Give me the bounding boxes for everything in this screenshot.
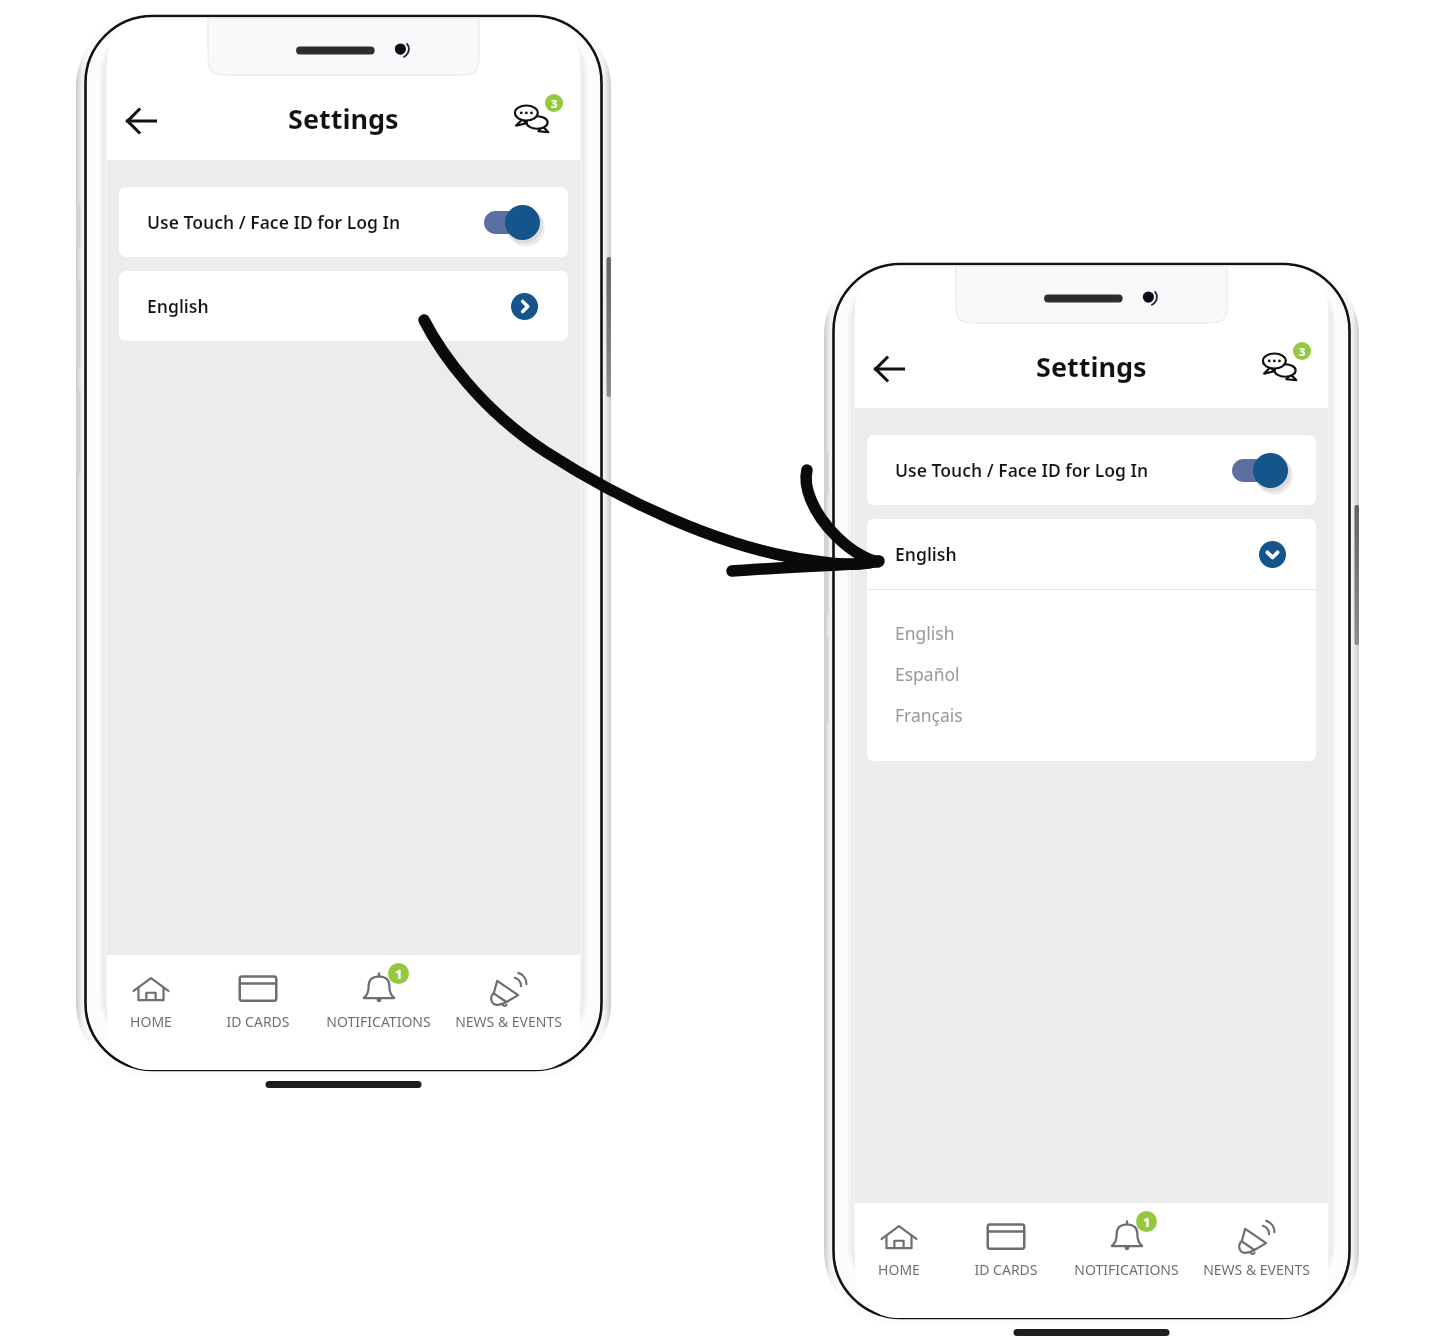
button[interactable]: HOME <box>107 955 194 1040</box>
button[interactable]: Back <box>115 93 167 145</box>
staticText: HOME <box>878 1260 920 1279</box>
button[interactable]: English <box>119 271 568 341</box>
staticText: Español <box>895 662 960 686</box>
staticText: 3 <box>551 96 558 111</box>
button[interactable]: 1 <box>1069 1203 1184 1288</box>
staticText: Settings <box>288 100 399 137</box>
staticText: English <box>895 621 955 645</box>
button[interactable]: Collapse language list <box>1259 541 1286 568</box>
button[interactable]: ID CARDS <box>194 955 321 1040</box>
button[interactable]: ID CARDS <box>942 1203 1069 1288</box>
button[interactable]: Use Touch / Face ID for Log In <box>119 187 568 257</box>
staticText: English <box>147 294 209 318</box>
staticText: NOTIFICATIONS <box>326 1012 431 1031</box>
button[interactable]: HOME <box>855 1203 942 1288</box>
staticText: NOTIFICATIONS <box>1074 1260 1179 1279</box>
button[interactable]: Use Touch / Face ID for Log In <box>867 435 1316 505</box>
staticText: Use Touch / Face ID for Log In <box>895 458 1149 482</box>
button[interactable]: Expand language list <box>511 293 538 320</box>
staticText: 1 <box>1143 1213 1151 1231</box>
staticText: 3 <box>1299 344 1306 359</box>
button[interactable]: NEWS & EVENTS <box>1184 1203 1328 1288</box>
button[interactable]: Français <box>867 694 1316 735</box>
staticText: Settings <box>1036 348 1147 385</box>
button[interactable]: English <box>867 519 1316 589</box>
staticText: NEWS & EVENTS <box>1203 1260 1310 1279</box>
button[interactable]: Messages <box>518 91 574 147</box>
button[interactable]: English <box>867 612 1316 653</box>
button[interactable]: 1 <box>321 955 436 1040</box>
button[interactable]: Back <box>863 341 915 393</box>
staticText: HOME <box>130 1012 172 1031</box>
staticText: Use Touch / Face ID for Log In <box>147 210 401 234</box>
staticText: NEWS & EVENTS <box>455 1012 562 1031</box>
staticText: English <box>895 542 957 566</box>
button[interactable]: NEWS & EVENTS <box>436 955 580 1040</box>
button[interactable]: Messages <box>1266 339 1322 395</box>
button[interactable]: Español <box>867 653 1316 694</box>
staticText: ID CARDS <box>226 1012 290 1031</box>
staticText: ID CARDS <box>974 1260 1038 1279</box>
staticText: 1 <box>395 965 403 983</box>
staticText: Français <box>895 703 963 727</box>
